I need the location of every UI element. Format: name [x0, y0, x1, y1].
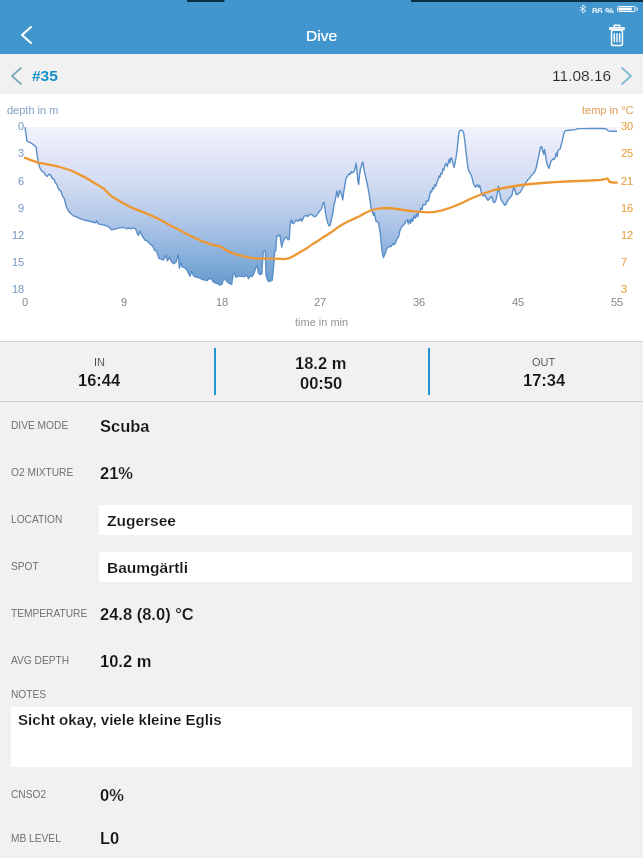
button[interactable]: 11.08.16 — [548, 63, 635, 88]
staticText: 45 — [512, 296, 525, 308]
staticText: 0 — [22, 296, 29, 308]
staticText: L0 — [100, 829, 120, 847]
staticText: 25 — [621, 147, 634, 159]
staticText: time in min — [295, 316, 349, 328]
staticText: 17:34 — [523, 371, 566, 389]
staticText: temp in °C — [582, 104, 634, 116]
staticText: 10.2 m — [100, 652, 152, 670]
staticText: 7 — [621, 256, 628, 268]
staticText: NOTES — [11, 689, 47, 700]
staticText: #35 — [32, 67, 58, 84]
staticText: 0 — [18, 120, 25, 132]
staticText: Scuba — [100, 417, 150, 435]
button[interactable]: Back — [0, 15, 53, 55]
button[interactable]: MB LEVEL — [0, 818, 643, 858]
staticText: Zugersee — [107, 512, 176, 529]
staticText: 24.8 (8.0) °C — [100, 605, 194, 623]
staticText: TEMPERATURE — [11, 608, 100, 619]
staticText: SPOT — [11, 561, 99, 572]
staticText: 3 — [18, 147, 25, 159]
staticText: 12 — [621, 229, 634, 241]
button[interactable]: SPOT — [0, 543, 643, 590]
button[interactable]: OUT — [464, 342, 624, 403]
staticText: IN — [94, 356, 105, 368]
button[interactable]: AVG DEPTH — [0, 637, 643, 684]
button[interactable]: 18.2 m — [241, 342, 401, 403]
staticText: O2 MIXTURE — [11, 467, 100, 478]
staticText: 0% — [100, 786, 124, 804]
staticText: 27 — [314, 296, 327, 308]
button[interactable]: LOCATION — [0, 496, 643, 543]
staticText: DIVE MODE — [11, 420, 100, 431]
staticText: 86 % — [592, 5, 614, 13]
button[interactable]: O2 MIXTURE — [0, 449, 643, 496]
staticText: 30 — [621, 120, 634, 132]
button[interactable]: CNSO2 — [0, 771, 643, 818]
button[interactable]: TEMPERATURE — [0, 590, 643, 637]
staticText: Sicht okay, viele kleine Eglis — [18, 711, 222, 728]
staticText: OUT — [532, 356, 556, 368]
button[interactable]: NOTES — [0, 684, 643, 771]
staticText: 55 — [611, 296, 624, 308]
staticText: 6 — [18, 175, 25, 187]
staticText: 9 — [121, 296, 128, 308]
button[interactable]: DIVE MODE — [0, 402, 643, 449]
staticText: 3 — [621, 283, 628, 295]
staticText: CNSO2 — [11, 789, 100, 800]
button[interactable]: #35 — [8, 63, 62, 88]
staticText: AVG DEPTH — [11, 655, 100, 666]
staticText: 18 — [216, 296, 229, 308]
staticText: 11.08.16 — [552, 67, 612, 84]
staticText: Baumgärtli — [107, 559, 188, 576]
button[interactable]: IN — [19, 342, 179, 403]
staticText: 36 — [413, 296, 426, 308]
button[interactable]: Delete — [590, 15, 643, 55]
staticText: Dive — [306, 27, 338, 44]
staticText: depth in m — [7, 104, 59, 116]
staticText: 18.2 m — [295, 354, 347, 372]
staticText: 9 — [18, 202, 25, 214]
staticText: 12 — [12, 229, 25, 241]
staticText: 15 — [12, 256, 25, 268]
staticText: 16:44 — [78, 371, 121, 389]
staticText: 00:50 — [300, 374, 343, 392]
staticText: MB LEVEL — [11, 833, 100, 844]
staticText: 16 — [621, 202, 634, 214]
staticText: 21% — [100, 464, 134, 482]
staticText: LOCATION — [11, 514, 99, 525]
staticText: 18 — [12, 283, 25, 295]
staticText: 21 — [621, 175, 634, 187]
